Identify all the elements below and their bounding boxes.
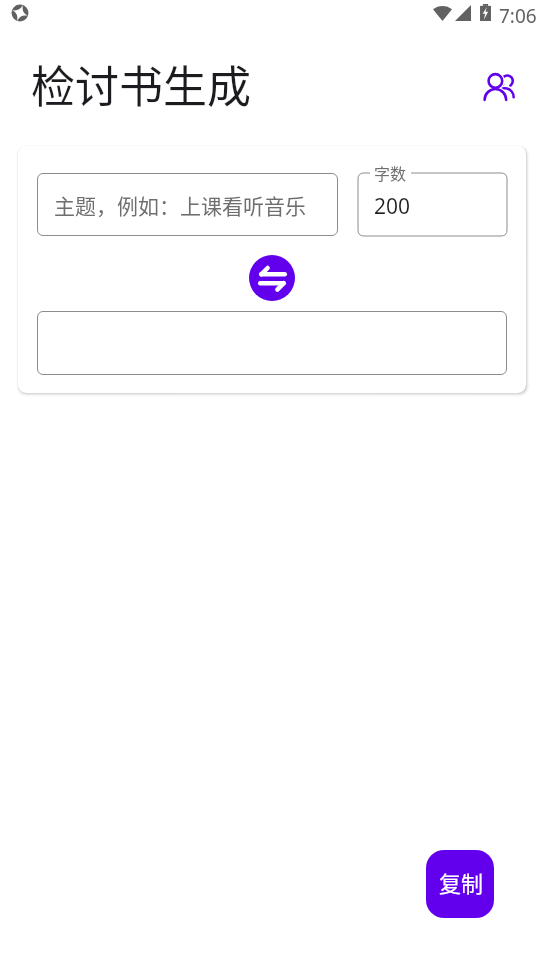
staticText: 主题，例如：上课看听音乐 [54, 190, 306, 220]
staticText: 复制 [439, 866, 484, 898]
button[interactable]: Generate [249, 255, 295, 301]
staticText: 检讨书生成 [31, 52, 251, 116]
staticText: 字数 [374, 161, 407, 184]
button[interactable] [37, 311, 507, 375]
button[interactable]: 复制 [426, 850, 494, 918]
staticText: 200 [374, 192, 411, 221]
button[interactable]: Account [476, 62, 524, 110]
staticText: 7:06 [499, 3, 537, 29]
button[interactable]: 主题，例如：上课看听音乐 [37, 173, 338, 236]
